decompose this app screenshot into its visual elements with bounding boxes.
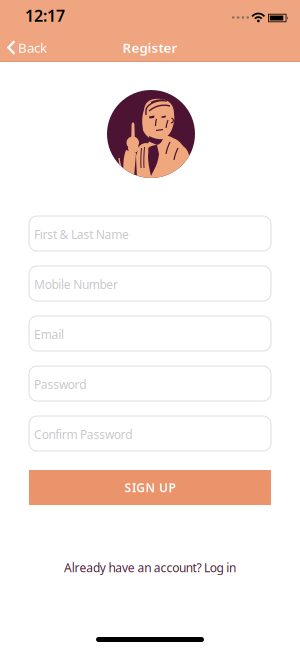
- staticText: Back: [18, 39, 47, 56]
- button[interactable]: SIGN UP: [29, 470, 271, 505]
- staticText: Register: [122, 39, 177, 56]
- staticText: Password: [34, 376, 86, 392]
- staticText: First & Last Name: [34, 226, 129, 242]
- button[interactable]: Back: [0, 39, 47, 56]
- staticText: Confirm Password: [34, 426, 132, 442]
- staticText: Email: [34, 326, 64, 342]
- staticText: Already have an account? Log in: [64, 559, 236, 575]
- staticText: SIGN UP: [125, 479, 175, 495]
- button[interactable]: Already have an account? Log in: [64, 559, 236, 575]
- staticText: Mobile Number: [34, 276, 118, 292]
- staticText: 12:17: [25, 5, 65, 26]
